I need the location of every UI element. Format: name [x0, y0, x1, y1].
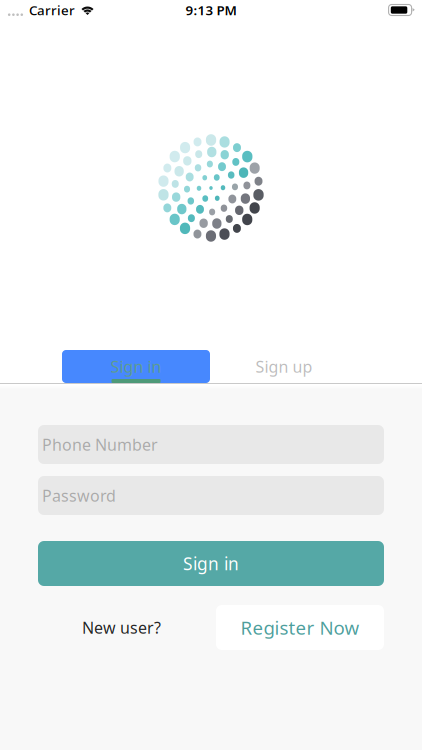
staticText: Sign in [183, 552, 239, 575]
staticText: Sign up [255, 356, 312, 377]
staticText: Phone Number [42, 434, 158, 455]
staticText: 9:13 PM [185, 1, 236, 19]
staticText: Register Now [240, 615, 359, 640]
button[interactable]: Sign in [38, 541, 384, 586]
staticText: New user? [82, 617, 161, 638]
button[interactable]: Sign up [210, 350, 358, 383]
button[interactable]: Register Now [216, 605, 384, 650]
staticText: Password [42, 485, 116, 506]
button[interactable]: Sign in [62, 350, 210, 383]
staticText: Carrier [29, 1, 75, 19]
staticText: Sign in [110, 356, 161, 377]
